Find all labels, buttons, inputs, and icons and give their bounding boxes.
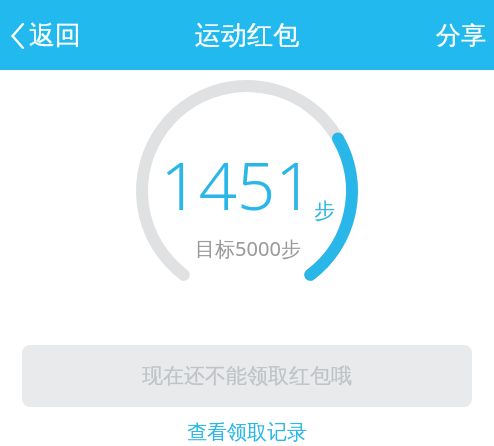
staticText: 分享 <box>436 20 486 51</box>
staticText: 现在还不能领取红包哦 <box>142 363 352 389</box>
staticText: 返回 <box>29 19 81 52</box>
staticText: 1451 <box>160 138 314 229</box>
staticText: 运动红包 <box>195 19 299 52</box>
staticText: 步 <box>314 198 335 224</box>
button[interactable]: 查看领取记录 <box>0 420 494 445</box>
button[interactable]: 现在还不能领取红包哦 <box>22 345 472 407</box>
staticText: 查看领取记录 <box>187 420 307 445</box>
staticText: 目标5000步 <box>195 235 301 262</box>
button[interactable]: 返回 <box>0 11 95 60</box>
button[interactable]: 分享 <box>428 10 494 61</box>
